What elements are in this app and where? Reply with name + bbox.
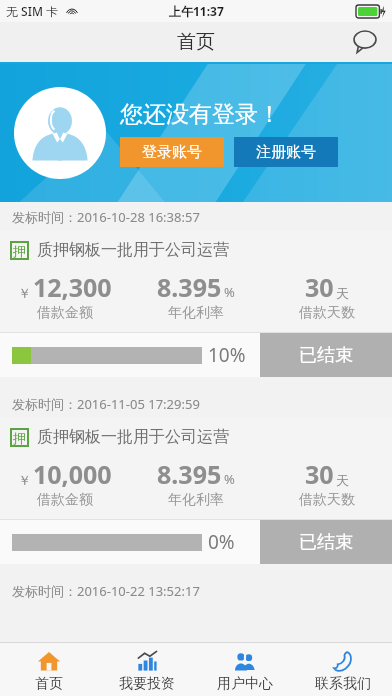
staticText: 12,300 xyxy=(33,270,112,304)
staticText: 年化利率 xyxy=(168,304,224,322)
staticText: 上午11:37 xyxy=(169,3,224,19)
staticText: 借款金额 xyxy=(37,491,93,509)
staticText: % xyxy=(224,470,235,488)
button[interactable]: 联系我们 xyxy=(294,643,392,696)
staticText: 年化利率 xyxy=(168,491,224,509)
staticText: 登录账号 xyxy=(142,143,202,162)
staticText: 已结束 xyxy=(299,344,353,367)
staticText: 质押钢板一批用于公司运营 xyxy=(37,240,229,260)
staticText: 0% xyxy=(208,529,260,555)
staticText: 借款天数 xyxy=(299,304,355,322)
button[interactable]: Messages xyxy=(348,25,382,59)
staticText: 用户中心 xyxy=(217,675,273,693)
button[interactable]: 用户中心 xyxy=(196,643,294,696)
staticText: % xyxy=(224,283,235,301)
button[interactable]: 我要投资 xyxy=(98,643,196,696)
staticText: 首页 xyxy=(177,30,215,54)
staticText: 押 xyxy=(13,430,26,446)
staticText: ￥ xyxy=(18,472,31,488)
staticText: ￥ xyxy=(18,285,31,301)
staticText: 借款金额 xyxy=(37,304,93,322)
button[interactable]: 押 xyxy=(0,231,392,377)
staticText: 10% xyxy=(208,342,260,368)
staticText: 押 xyxy=(13,243,26,259)
staticText: 我要投资 xyxy=(119,675,175,693)
staticText: 8.395 xyxy=(157,270,222,304)
staticText: 无 SIM 卡 xyxy=(6,3,59,19)
button[interactable]: 已结束 xyxy=(260,520,392,564)
staticText: 10,000 xyxy=(33,457,112,491)
staticText: 首页 xyxy=(35,675,63,693)
staticText: 发标时间：2016-10-22 13:52:17 xyxy=(12,582,200,600)
button[interactable]: 首页 xyxy=(0,643,98,696)
staticText: 发标时间：2016-11-05 17:29:59 xyxy=(12,395,200,413)
staticText: 注册账号 xyxy=(256,143,316,162)
staticText: 已结束 xyxy=(299,531,353,554)
staticText: 借款天数 xyxy=(299,491,355,509)
staticText: 质押钢板一批用于公司运营 xyxy=(37,427,229,447)
button[interactable]: 已结束 xyxy=(260,333,392,377)
staticText: 发标时间：2016-10-28 16:38:57 xyxy=(12,208,200,226)
staticText: 联系我们 xyxy=(315,675,371,693)
staticText: 30 xyxy=(305,457,334,491)
staticText: 您还没有登录！ xyxy=(120,100,281,129)
button[interactable]: 注册账号 xyxy=(234,137,338,167)
staticText: 30 xyxy=(305,270,334,304)
button[interactable]: 押 xyxy=(0,418,392,564)
staticText: 天 xyxy=(336,285,349,301)
button[interactable]: 登录账号 xyxy=(120,137,224,167)
staticText: 天 xyxy=(336,472,349,488)
staticText: 8.395 xyxy=(157,457,222,491)
